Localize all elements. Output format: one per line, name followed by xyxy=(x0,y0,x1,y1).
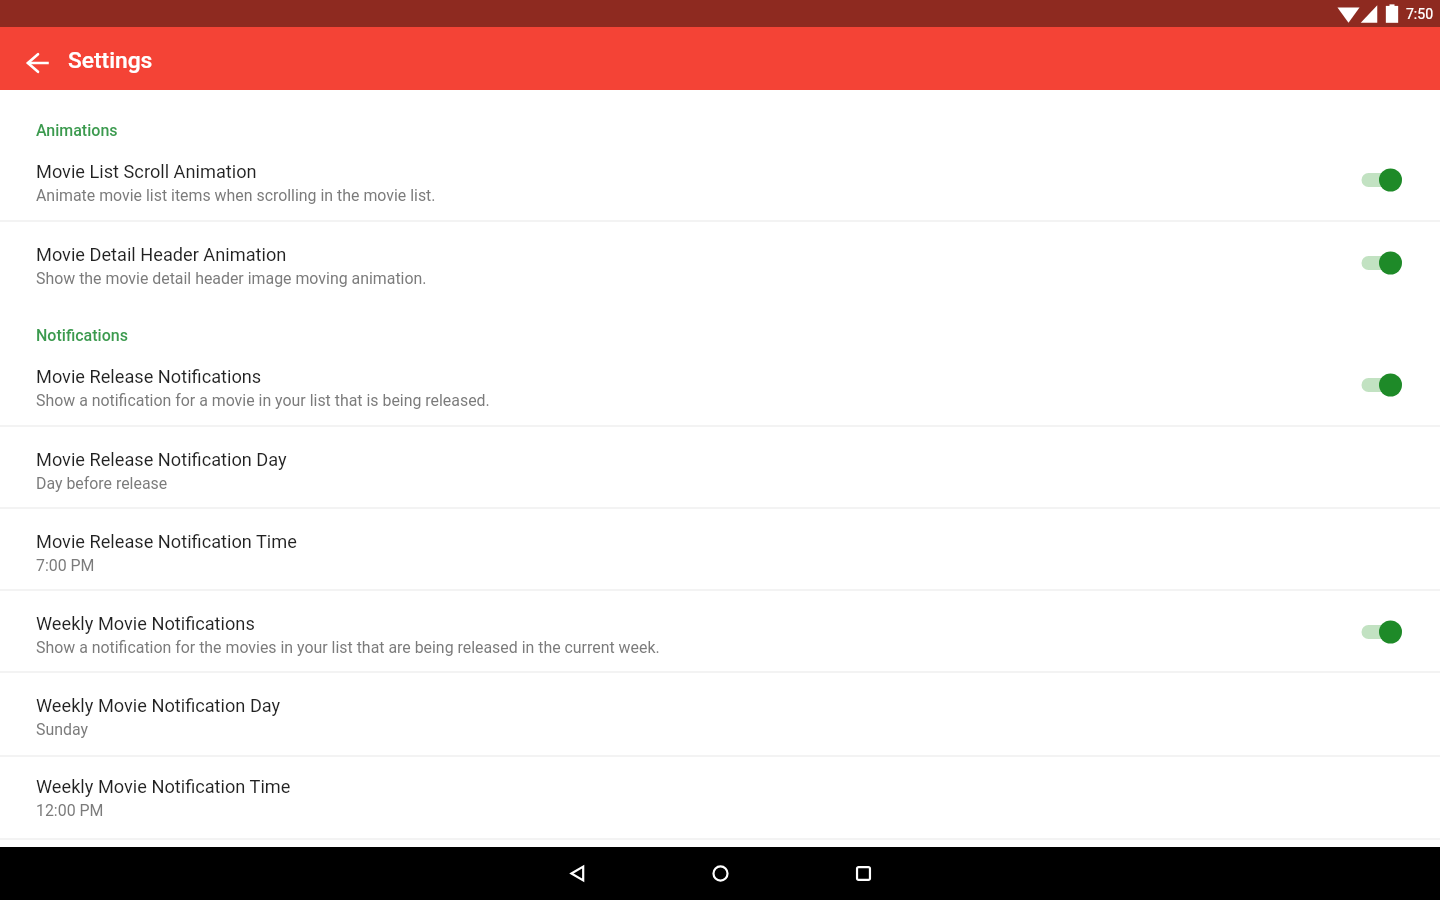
button[interactable]: Weekly Movie Notification Time xyxy=(0,753,1440,835)
button[interactable]: Weekly Movie Notifications toggle xyxy=(1351,612,1407,652)
staticText: Weekly Movie Notifications xyxy=(36,613,255,634)
staticText: Settings xyxy=(68,47,153,74)
button[interactable]: Movie Detail Header Animation toggle xyxy=(1351,243,1407,283)
staticText: Show a notification for the movies in yo… xyxy=(36,638,660,657)
staticText: Movie List Scroll Animation xyxy=(36,161,257,182)
staticText: Day before release xyxy=(36,474,168,493)
staticText: Movie Release Notifications xyxy=(36,366,262,387)
button[interactable]: Movie Release Notification Day xyxy=(0,426,1440,508)
staticText: 7:50 xyxy=(1406,6,1433,22)
button[interactable]: Recent apps xyxy=(815,847,911,900)
button[interactable]: Home xyxy=(672,847,768,900)
button[interactable]: Movie Release Notification Time xyxy=(0,508,1440,590)
staticText: Show a notification for a movie in your … xyxy=(36,391,490,410)
staticText: Movie Release Notification Day xyxy=(36,449,287,470)
button[interactable]: Weekly Movie Notifications xyxy=(0,590,1440,672)
staticText: Movie Detail Header Animation xyxy=(36,244,287,265)
staticText: Weekly Movie Notification Day xyxy=(36,695,281,716)
button[interactable]: Movie Detail Header Animation xyxy=(0,221,1440,303)
staticText: Movie Release Notification Time xyxy=(36,531,297,552)
staticText: Show the movie detail header image movin… xyxy=(36,269,427,288)
staticText: Notifications xyxy=(36,326,128,345)
button[interactable]: Movie Release Notifications xyxy=(0,343,1440,425)
staticText: Animate movie list items when scrolling … xyxy=(36,186,436,205)
staticText: 12:00 PM xyxy=(36,801,104,820)
button[interactable]: Movie Release Notifications toggle xyxy=(1351,365,1407,405)
button[interactable]: Movie List Scroll Animation xyxy=(0,138,1440,220)
button[interactable]: Back xyxy=(529,847,625,900)
staticText: Weekly Movie Notification Time xyxy=(36,776,291,797)
button[interactable]: Weekly Movie Notification Day xyxy=(0,672,1440,754)
staticText: 7:00 PM xyxy=(36,556,95,575)
button[interactable]: Navigate up xyxy=(14,39,62,87)
staticText: Sunday xyxy=(36,720,88,739)
staticText: Animations xyxy=(36,121,118,140)
button[interactable]: Movie List Scroll Animation toggle xyxy=(1351,160,1407,200)
